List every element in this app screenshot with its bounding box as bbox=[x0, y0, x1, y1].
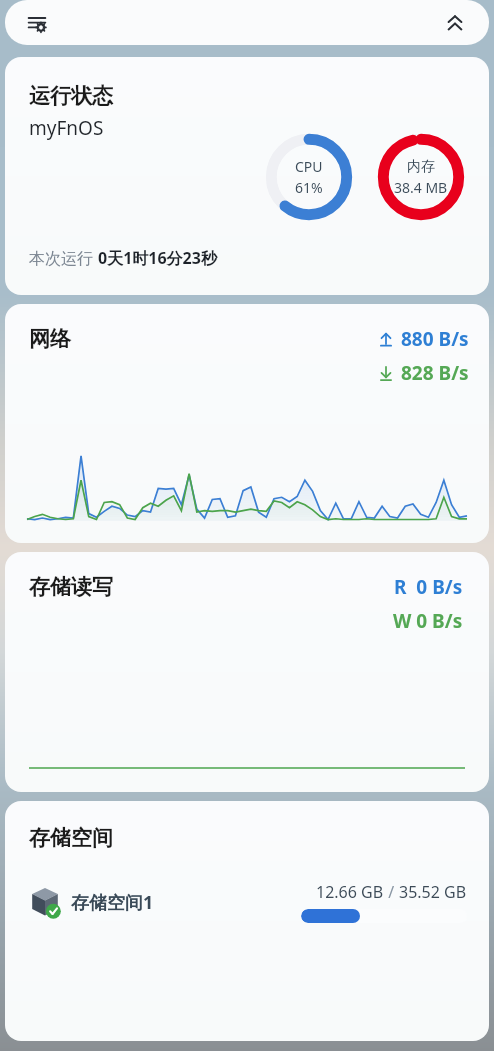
staticText: 38.4 MB bbox=[394, 178, 448, 197]
button[interactable]: 运行状态 bbox=[5, 57, 489, 295]
button[interactable]: 存储空间1 bbox=[29, 881, 467, 923]
staticText: 存储读写 bbox=[29, 574, 113, 600]
staticText: 828 B/s bbox=[401, 360, 469, 386]
button[interactable]: 存储空间 bbox=[5, 801, 489, 1041]
button[interactable]: Menu options bbox=[19, 5, 55, 41]
staticText: 12.66 GB bbox=[316, 881, 384, 903]
button[interactable]: 存储读写 bbox=[5, 552, 489, 792]
staticText: / bbox=[384, 881, 399, 903]
staticText: 880 B/s bbox=[401, 326, 469, 352]
staticText: 61% bbox=[295, 178, 323, 197]
staticText: 本次运行 bbox=[29, 247, 98, 269]
staticText: CPU bbox=[295, 157, 323, 176]
staticText: 内存 bbox=[407, 158, 435, 176]
staticText: myFnOS bbox=[29, 115, 104, 141]
staticText: 35.52 GB bbox=[399, 881, 467, 903]
staticText: W 0 B/s bbox=[393, 608, 463, 634]
staticText: 运行状态 bbox=[29, 83, 113, 109]
button[interactable]: 网络 bbox=[5, 304, 489, 543]
staticText: 网络 bbox=[29, 326, 71, 352]
staticText: 存储空间 bbox=[29, 825, 113, 851]
staticText: R 0 B/s bbox=[394, 574, 463, 600]
staticText: 存储空间1 bbox=[71, 890, 154, 915]
staticText: 0天1时16分23秒 bbox=[98, 247, 217, 269]
button[interactable]: Collapse bbox=[437, 5, 473, 41]
